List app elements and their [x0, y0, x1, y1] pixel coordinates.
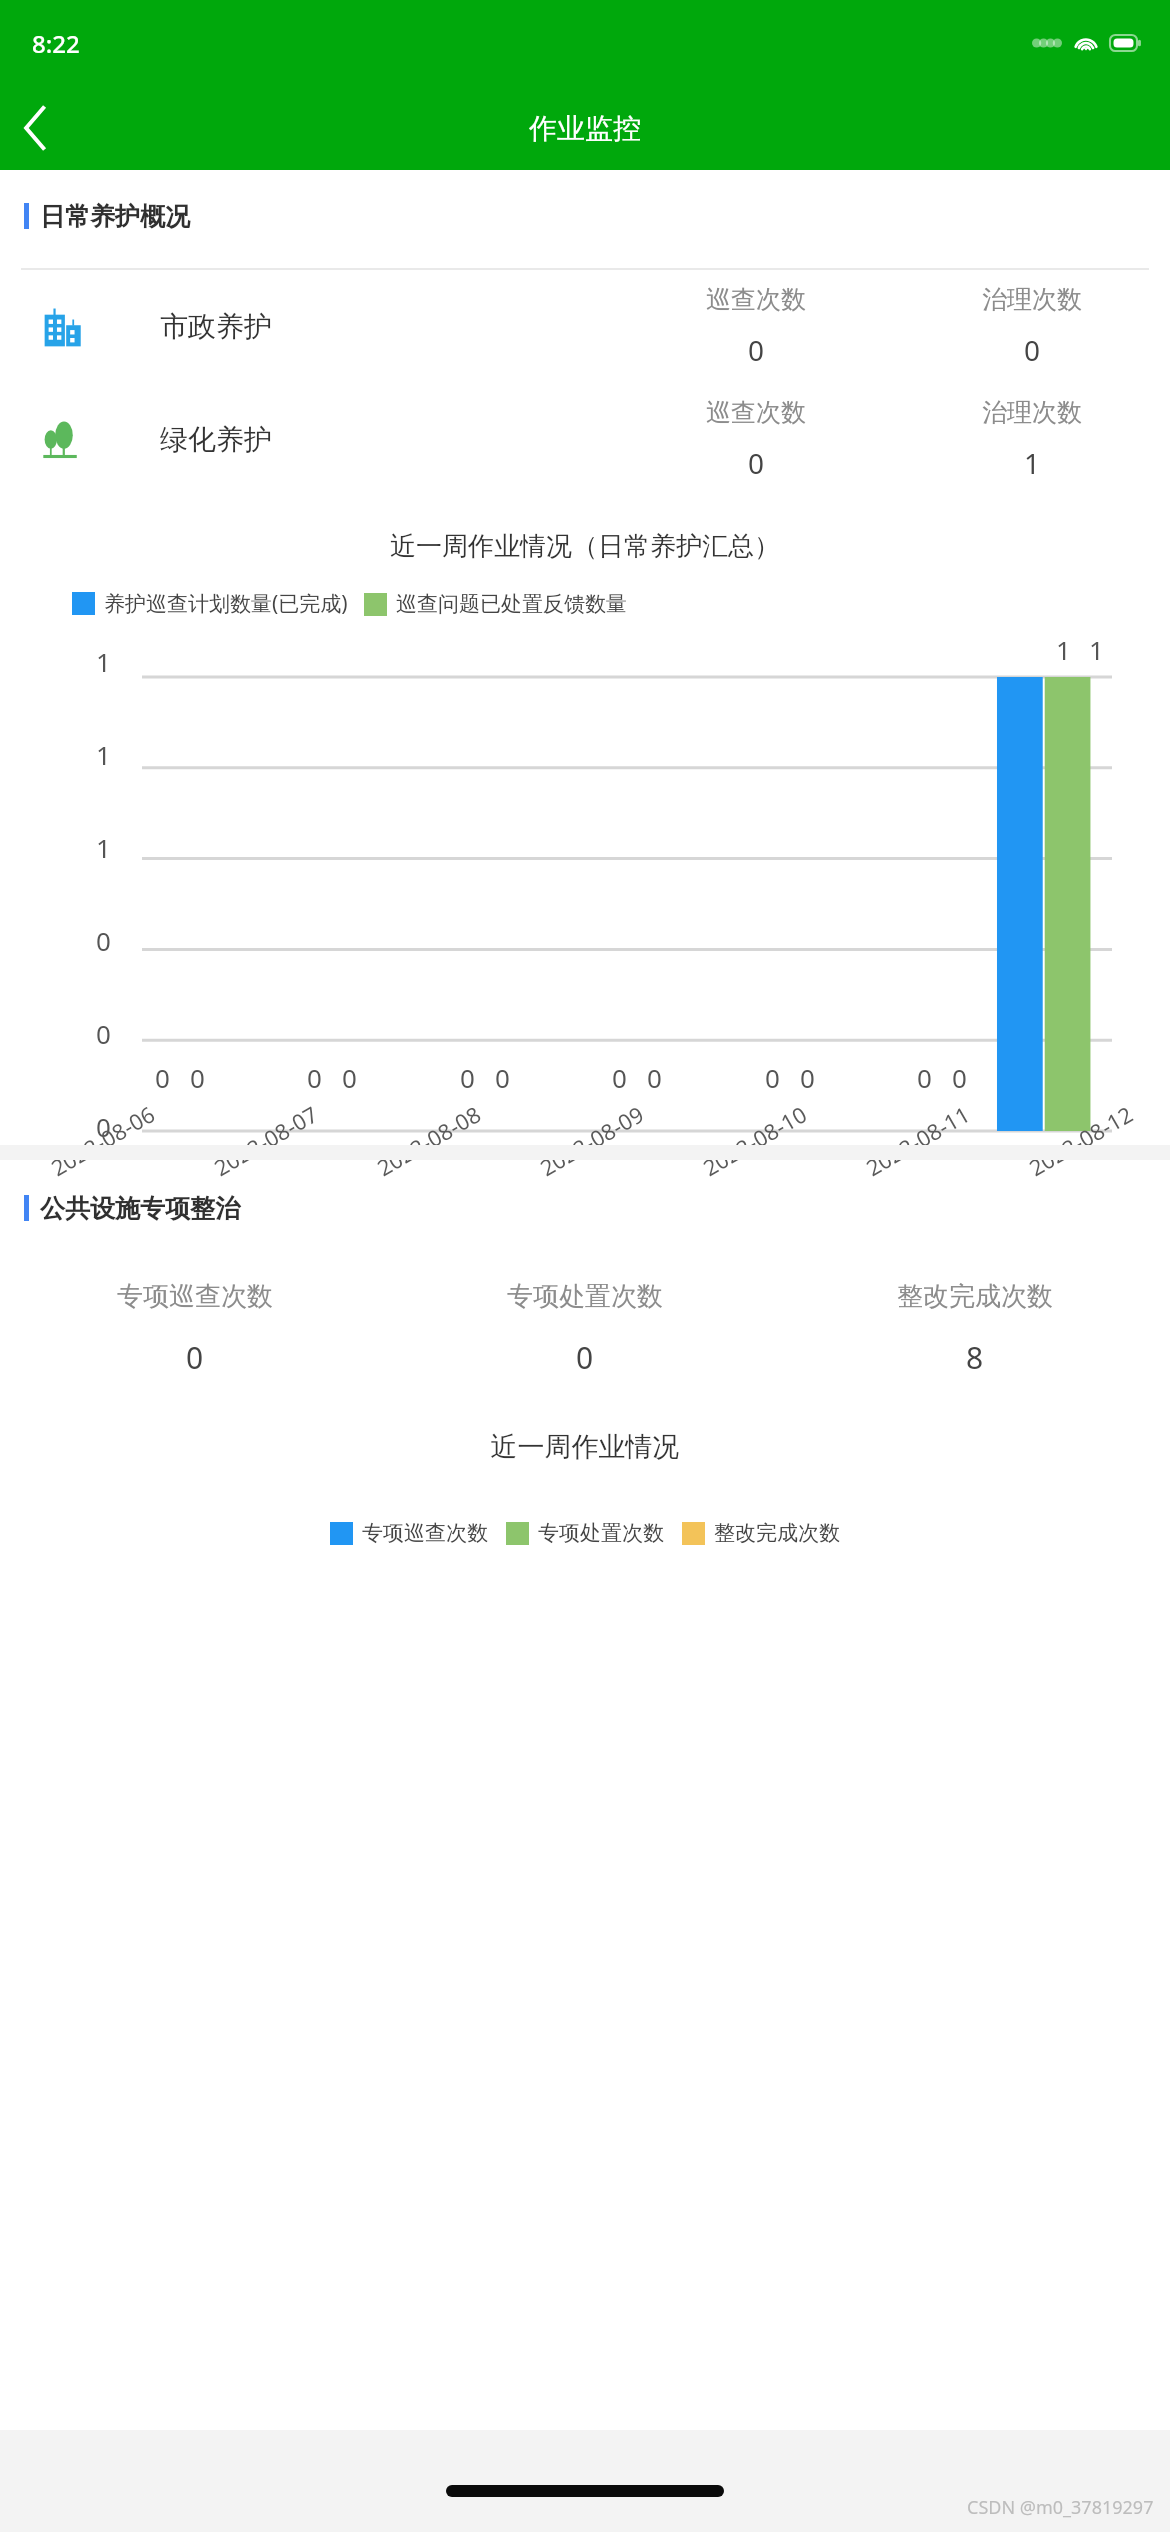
staticText: 整改完成次数 [714, 1520, 840, 1546]
staticText: 2022-08-07 [208, 1099, 323, 1182]
staticText: 0 [96, 1016, 111, 1051]
staticText: 治理次数 [982, 284, 1082, 315]
staticText: 1 [96, 737, 111, 772]
staticText: 绿化养护 [160, 422, 272, 457]
staticText: 1 [96, 830, 111, 865]
staticText: 0 [460, 1060, 475, 1095]
staticText: 养护巡查计划数量(已完成) [104, 589, 348, 618]
staticText: 0 [917, 1060, 932, 1095]
staticText: 2022-08-06 [45, 1099, 160, 1182]
staticText: 市政养护 [160, 309, 272, 344]
staticText: 0 [190, 1060, 205, 1095]
staticText: 0 [748, 444, 765, 482]
staticText: 0 [748, 331, 765, 369]
staticText: 0 [307, 1060, 322, 1095]
staticText: 整改完成次数 [897, 1280, 1053, 1313]
button[interactable]: 专项处置次数 [390, 1280, 780, 1378]
staticText: 0 [765, 1060, 780, 1095]
staticText: 0 [495, 1060, 510, 1095]
staticText: 专项处置次数 [507, 1280, 663, 1313]
button[interactable]: 市政养护 [0, 270, 1170, 383]
button[interactable]: Back [6, 98, 66, 158]
staticText: 2022-08-09 [534, 1099, 649, 1182]
staticText: CSDN @m0_37819297 [967, 2495, 1154, 2520]
staticText: 专项处置次数 [538, 1520, 664, 1546]
staticText: 巡查次数 [706, 397, 806, 428]
staticText: 0 [576, 1337, 594, 1378]
staticText: 公共设施专项整治 [40, 1193, 240, 1224]
staticText: 0 [647, 1060, 662, 1095]
staticText: 0 [342, 1060, 357, 1095]
staticText: 治理次数 [982, 397, 1082, 428]
staticText: 近一周作业情况（日常养护汇总） [0, 530, 1170, 563]
button[interactable]: 专项巡查次数 [0, 1280, 390, 1378]
staticText: 0 [800, 1060, 815, 1095]
staticText: 1 [96, 644, 111, 679]
staticText: 近一周作业情况 [0, 1430, 1170, 1464]
staticText: 8 [966, 1337, 984, 1378]
staticText: 巡查问题已处置反馈数量 [396, 591, 627, 617]
staticText: 专项巡查次数 [117, 1280, 273, 1313]
staticText: 0 [612, 1060, 627, 1095]
staticText: 1 [1024, 444, 1041, 482]
staticText: 2022-08-08 [371, 1099, 486, 1182]
staticText: 2022-08-11 [860, 1099, 975, 1182]
staticText: 2022-08-12 [1023, 1099, 1138, 1182]
staticText: 0 [96, 923, 111, 958]
staticText: 2022-08-10 [697, 1099, 812, 1182]
staticText: 0 [1024, 331, 1041, 369]
staticText: 0 [952, 1060, 967, 1095]
staticText: 8:22 [32, 27, 80, 60]
button[interactable]: 绿化养护 [0, 383, 1170, 496]
staticText: 0 [155, 1060, 170, 1095]
button[interactable]: 整改完成次数 [780, 1280, 1170, 1378]
staticText: 作业监控 [529, 111, 641, 146]
staticText: 0 [96, 1109, 111, 1144]
staticText: 巡查次数 [706, 284, 806, 315]
staticText: 0 [186, 1337, 204, 1378]
staticText: 专项巡查次数 [362, 1520, 488, 1546]
staticText: 1 [1056, 632, 1071, 667]
staticText: 日常养护概况 [40, 201, 190, 232]
staticText: 1 [1089, 632, 1104, 667]
